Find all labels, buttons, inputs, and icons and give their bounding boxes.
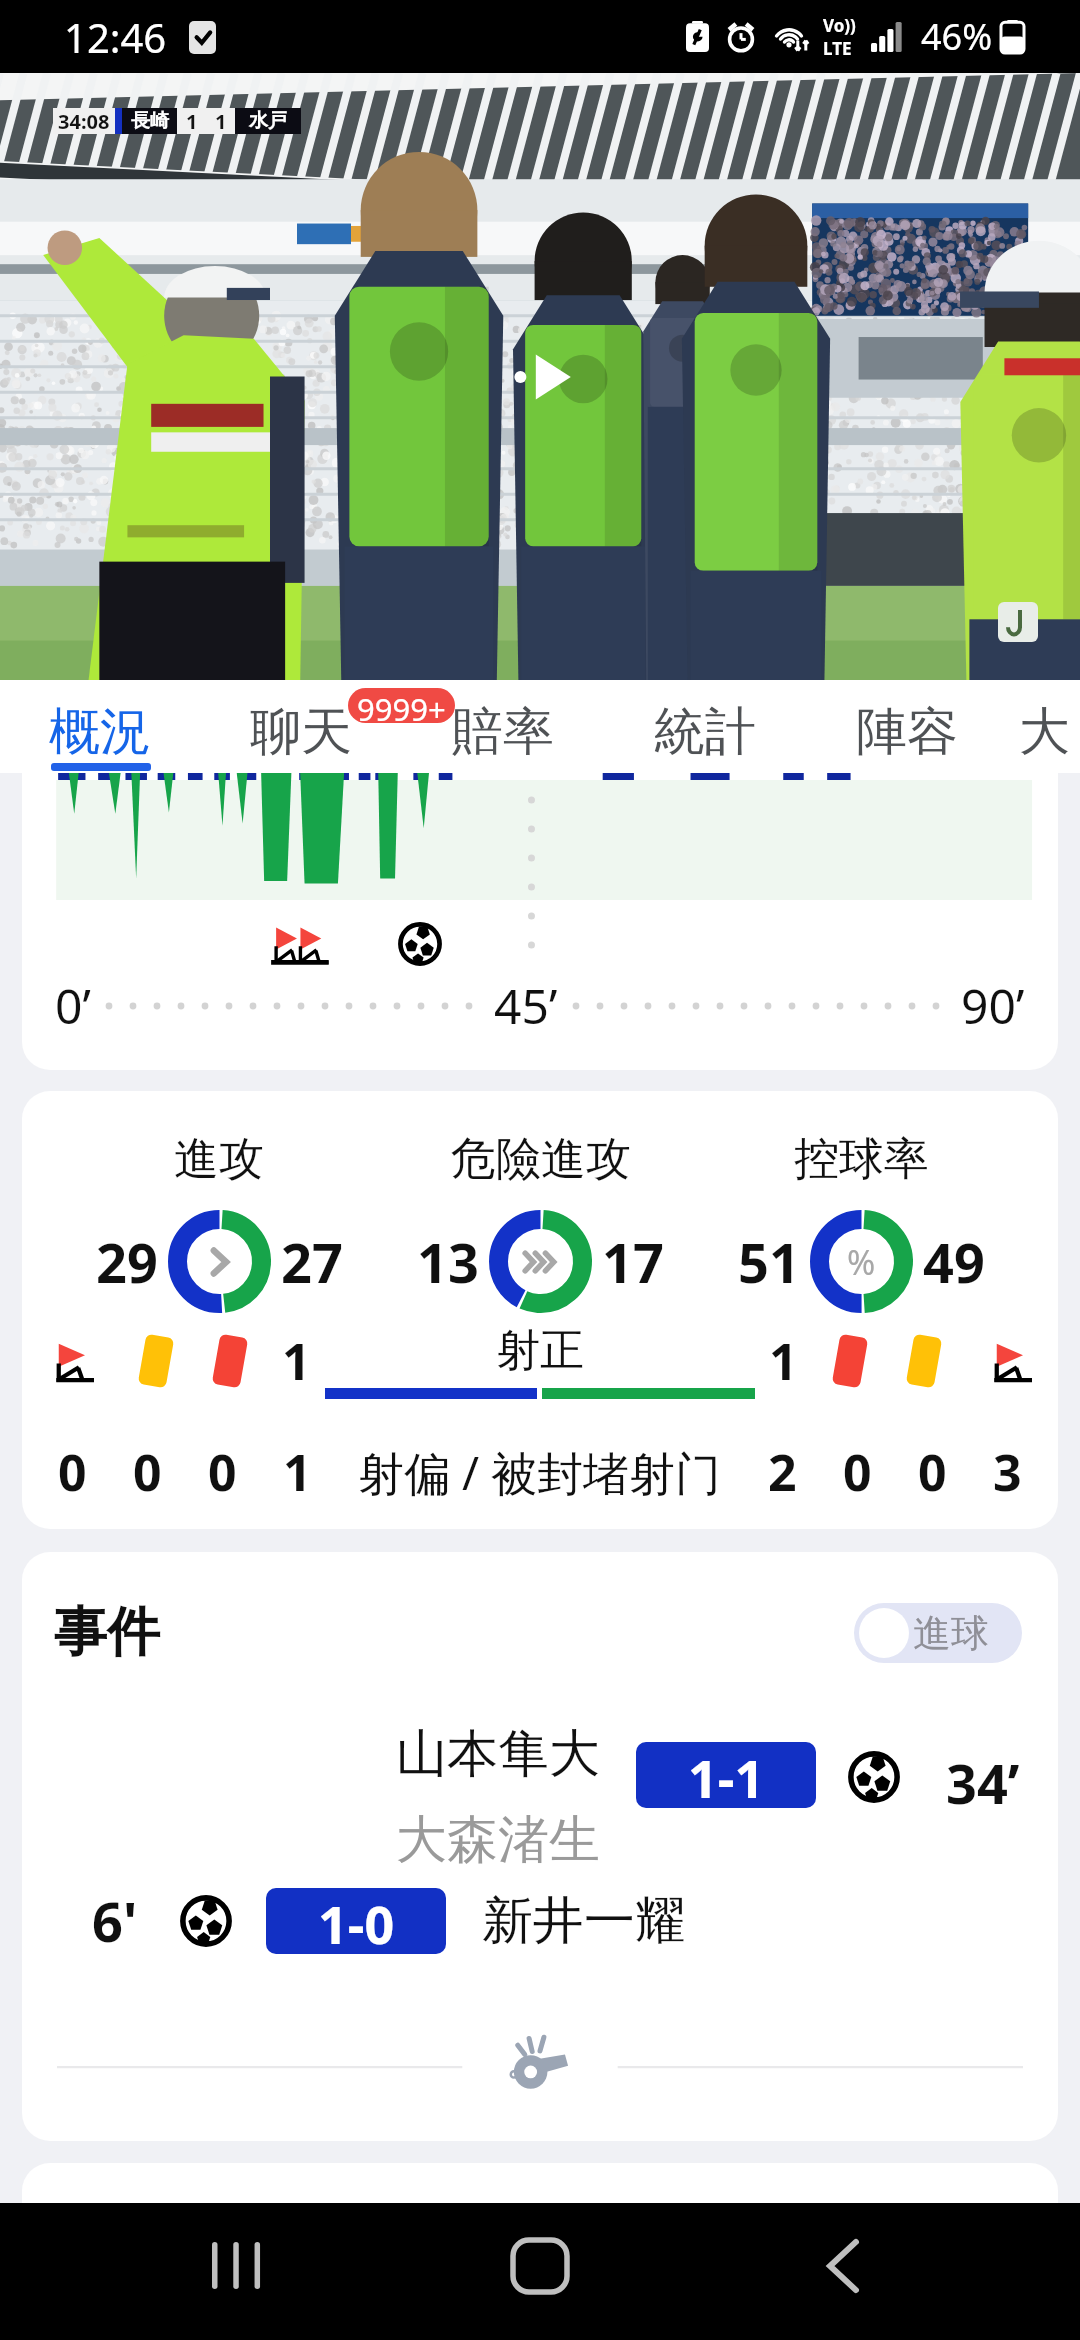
staticText: 聊天 — [250, 700, 352, 764]
staticText: 控球率 — [794, 1131, 929, 1188]
button[interactable]: 概況 — [0, 680, 200, 773]
staticText: 水戸 — [249, 109, 287, 133]
button[interactable]: 進球 — [854, 1603, 1022, 1663]
staticText: 12:46 — [64, 10, 167, 64]
staticText: 9999+ — [357, 688, 446, 723]
staticText: 0 — [843, 1438, 872, 1506]
staticText: 49 — [923, 1225, 985, 1299]
staticText: 大森渚生 — [396, 1808, 600, 1872]
button[interactable]: Recents — [152, 2203, 322, 2328]
staticText: 1 — [769, 1327, 798, 1395]
staticText: 長崎 — [131, 109, 169, 133]
staticText: 山本隼大 — [396, 1722, 600, 1786]
button[interactable]: 賠率 — [402, 680, 604, 773]
button[interactable]: Back — [758, 2203, 928, 2328]
staticText: 0 — [208, 1438, 237, 1506]
staticText: 進球 — [913, 1609, 989, 1657]
staticText: 大 — [1019, 700, 1070, 764]
button[interactable]: 統計 — [604, 680, 806, 773]
staticText: 45’ — [494, 973, 558, 1038]
staticText: 34:08 — [58, 108, 110, 134]
staticText: 陣容 — [856, 700, 958, 764]
staticText: 進攻 — [174, 1131, 264, 1188]
staticText: 危險進攻 — [451, 1131, 631, 1188]
staticText: 46% — [921, 12, 993, 61]
staticText: LTE — [823, 37, 852, 60]
staticText: 51 — [738, 1225, 800, 1299]
staticText: 90’ — [961, 973, 1025, 1038]
staticText: 1 — [283, 1438, 312, 1506]
staticText: 3 — [993, 1438, 1022, 1506]
staticText: 0 — [58, 1438, 87, 1506]
button[interactable]: 大 — [1008, 680, 1080, 773]
staticText: 27 — [281, 1225, 343, 1299]
staticText: 0 — [133, 1438, 162, 1506]
button[interactable]: 聊天 — [200, 680, 402, 773]
staticText: 0’ — [55, 973, 91, 1038]
button[interactable]: 陣容 — [806, 680, 1008, 773]
staticText: 概況 — [49, 700, 151, 764]
staticText: 2 — [768, 1438, 797, 1506]
staticText: 34’ — [946, 1746, 1020, 1820]
button[interactable]: 1-1 — [636, 1742, 816, 1808]
staticText: 1 — [282, 1327, 311, 1395]
staticText: 1 — [215, 108, 227, 134]
staticText: 新井一耀 — [482, 1889, 686, 1953]
staticText: 射偏 / 被封堵射门 — [358, 1441, 722, 1504]
staticText: 1-1 — [688, 1742, 765, 1808]
button[interactable]: Play — [470, 307, 610, 447]
staticText: Vo)) — [823, 14, 856, 37]
button[interactable]: Home — [455, 2203, 625, 2328]
staticText: 1 — [186, 108, 198, 134]
button[interactable]: 1-0 — [266, 1888, 446, 1954]
staticText: 6' — [92, 1884, 138, 1958]
staticText: 1-0 — [318, 1888, 395, 1954]
staticText: 射正 — [496, 1323, 584, 1378]
staticText: 0 — [918, 1438, 947, 1506]
staticText: 29 — [96, 1225, 158, 1299]
staticText: 事件 — [54, 1599, 160, 1666]
staticText: 13 — [417, 1225, 479, 1299]
staticText: 賠率 — [452, 700, 554, 764]
staticText: 17 — [602, 1225, 664, 1299]
staticText: 統計 — [654, 700, 756, 764]
staticText: % — [847, 1239, 876, 1285]
